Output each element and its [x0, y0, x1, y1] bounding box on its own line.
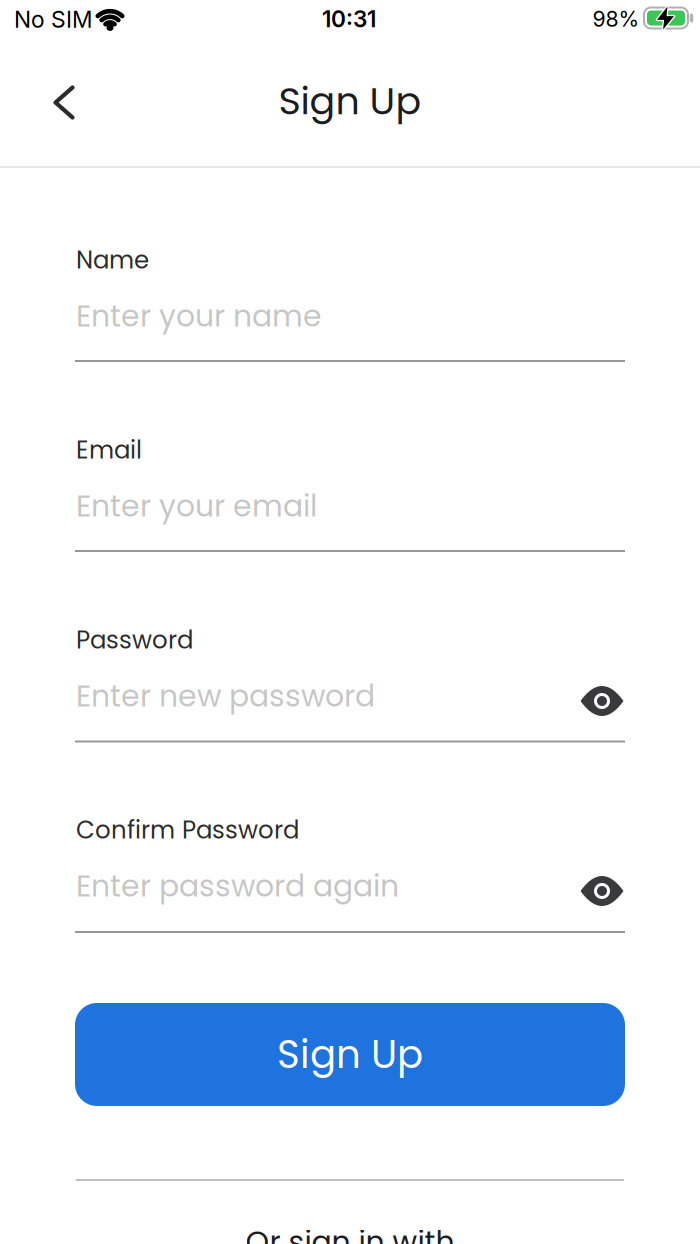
button[interactable]: Enter your name — [75, 272, 625, 362]
staticText: No SIM — [14, 6, 93, 33]
button[interactable]: Back — [36, 74, 92, 130]
staticText: 98% — [592, 6, 639, 32]
staticText: 10:31 — [322, 5, 376, 33]
staticText: Email — [76, 433, 142, 467]
staticText: Enter your name — [76, 295, 322, 337]
button[interactable]: Show password — [580, 876, 623, 906]
staticText: Enter your email — [76, 485, 317, 527]
staticText: Sign Up — [277, 1027, 423, 1081]
staticText: Name — [76, 243, 149, 277]
button[interactable]: Enter password again — [75, 843, 625, 933]
staticText: Confirm Password — [76, 813, 299, 847]
button[interactable]: Show password — [580, 686, 623, 716]
staticText: Or sign in with — [245, 1221, 454, 1244]
button[interactable]: Enter new password — [75, 652, 625, 742]
staticText: Enter password again — [76, 865, 399, 907]
staticText: Sign Up — [278, 74, 421, 128]
staticText: Password — [76, 623, 193, 657]
staticText: Enter new password — [76, 675, 375, 717]
button[interactable]: Enter your email — [75, 462, 625, 552]
button[interactable]: Sign Up — [75, 1003, 625, 1106]
